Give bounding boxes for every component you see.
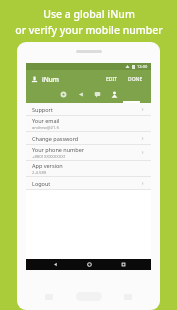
staticText: 12:00 — [137, 64, 148, 69]
button[interactable]: Recent apps — [106, 259, 140, 270]
button[interactable]: Back — [38, 259, 72, 270]
button[interactable]: Support — [26, 103, 151, 115]
staticText: Change password — [32, 135, 79, 142]
staticText: andrew@21.fi — [32, 125, 59, 131]
button[interactable]: Home — [72, 259, 106, 270]
staticText: App version — [32, 162, 63, 169]
staticText: DONE — [128, 76, 143, 83]
staticText: Support — [32, 106, 53, 113]
staticText: Logout — [32, 180, 51, 187]
button[interactable]: Change password — [26, 132, 151, 144]
button[interactable]: Your email — [26, 116, 151, 131]
staticText: Your phone number — [32, 146, 85, 153]
button[interactable]: Logout — [26, 177, 151, 189]
staticText: iNum — [42, 75, 60, 84]
button[interactable]: Dialer — [55, 88, 72, 101]
staticText: 2.4.589 — [32, 170, 47, 176]
staticText: Use a global iNum — [43, 7, 135, 21]
button[interactable]: DONE — [125, 74, 146, 85]
button[interactable]: Messages — [89, 88, 106, 101]
button[interactable]: EDIT — [103, 74, 121, 85]
button[interactable]: Your phone number — [26, 145, 151, 160]
button[interactable]: App version — [26, 161, 151, 176]
button[interactable]: Profile — [106, 88, 123, 101]
staticText: Your email — [32, 117, 60, 124]
staticText: +8801XXXXXXXX1 — [32, 154, 67, 160]
staticText: or verify your mobile number — [15, 23, 163, 37]
button[interactable]: Calls — [72, 88, 89, 101]
staticText: EDIT — [106, 76, 118, 83]
